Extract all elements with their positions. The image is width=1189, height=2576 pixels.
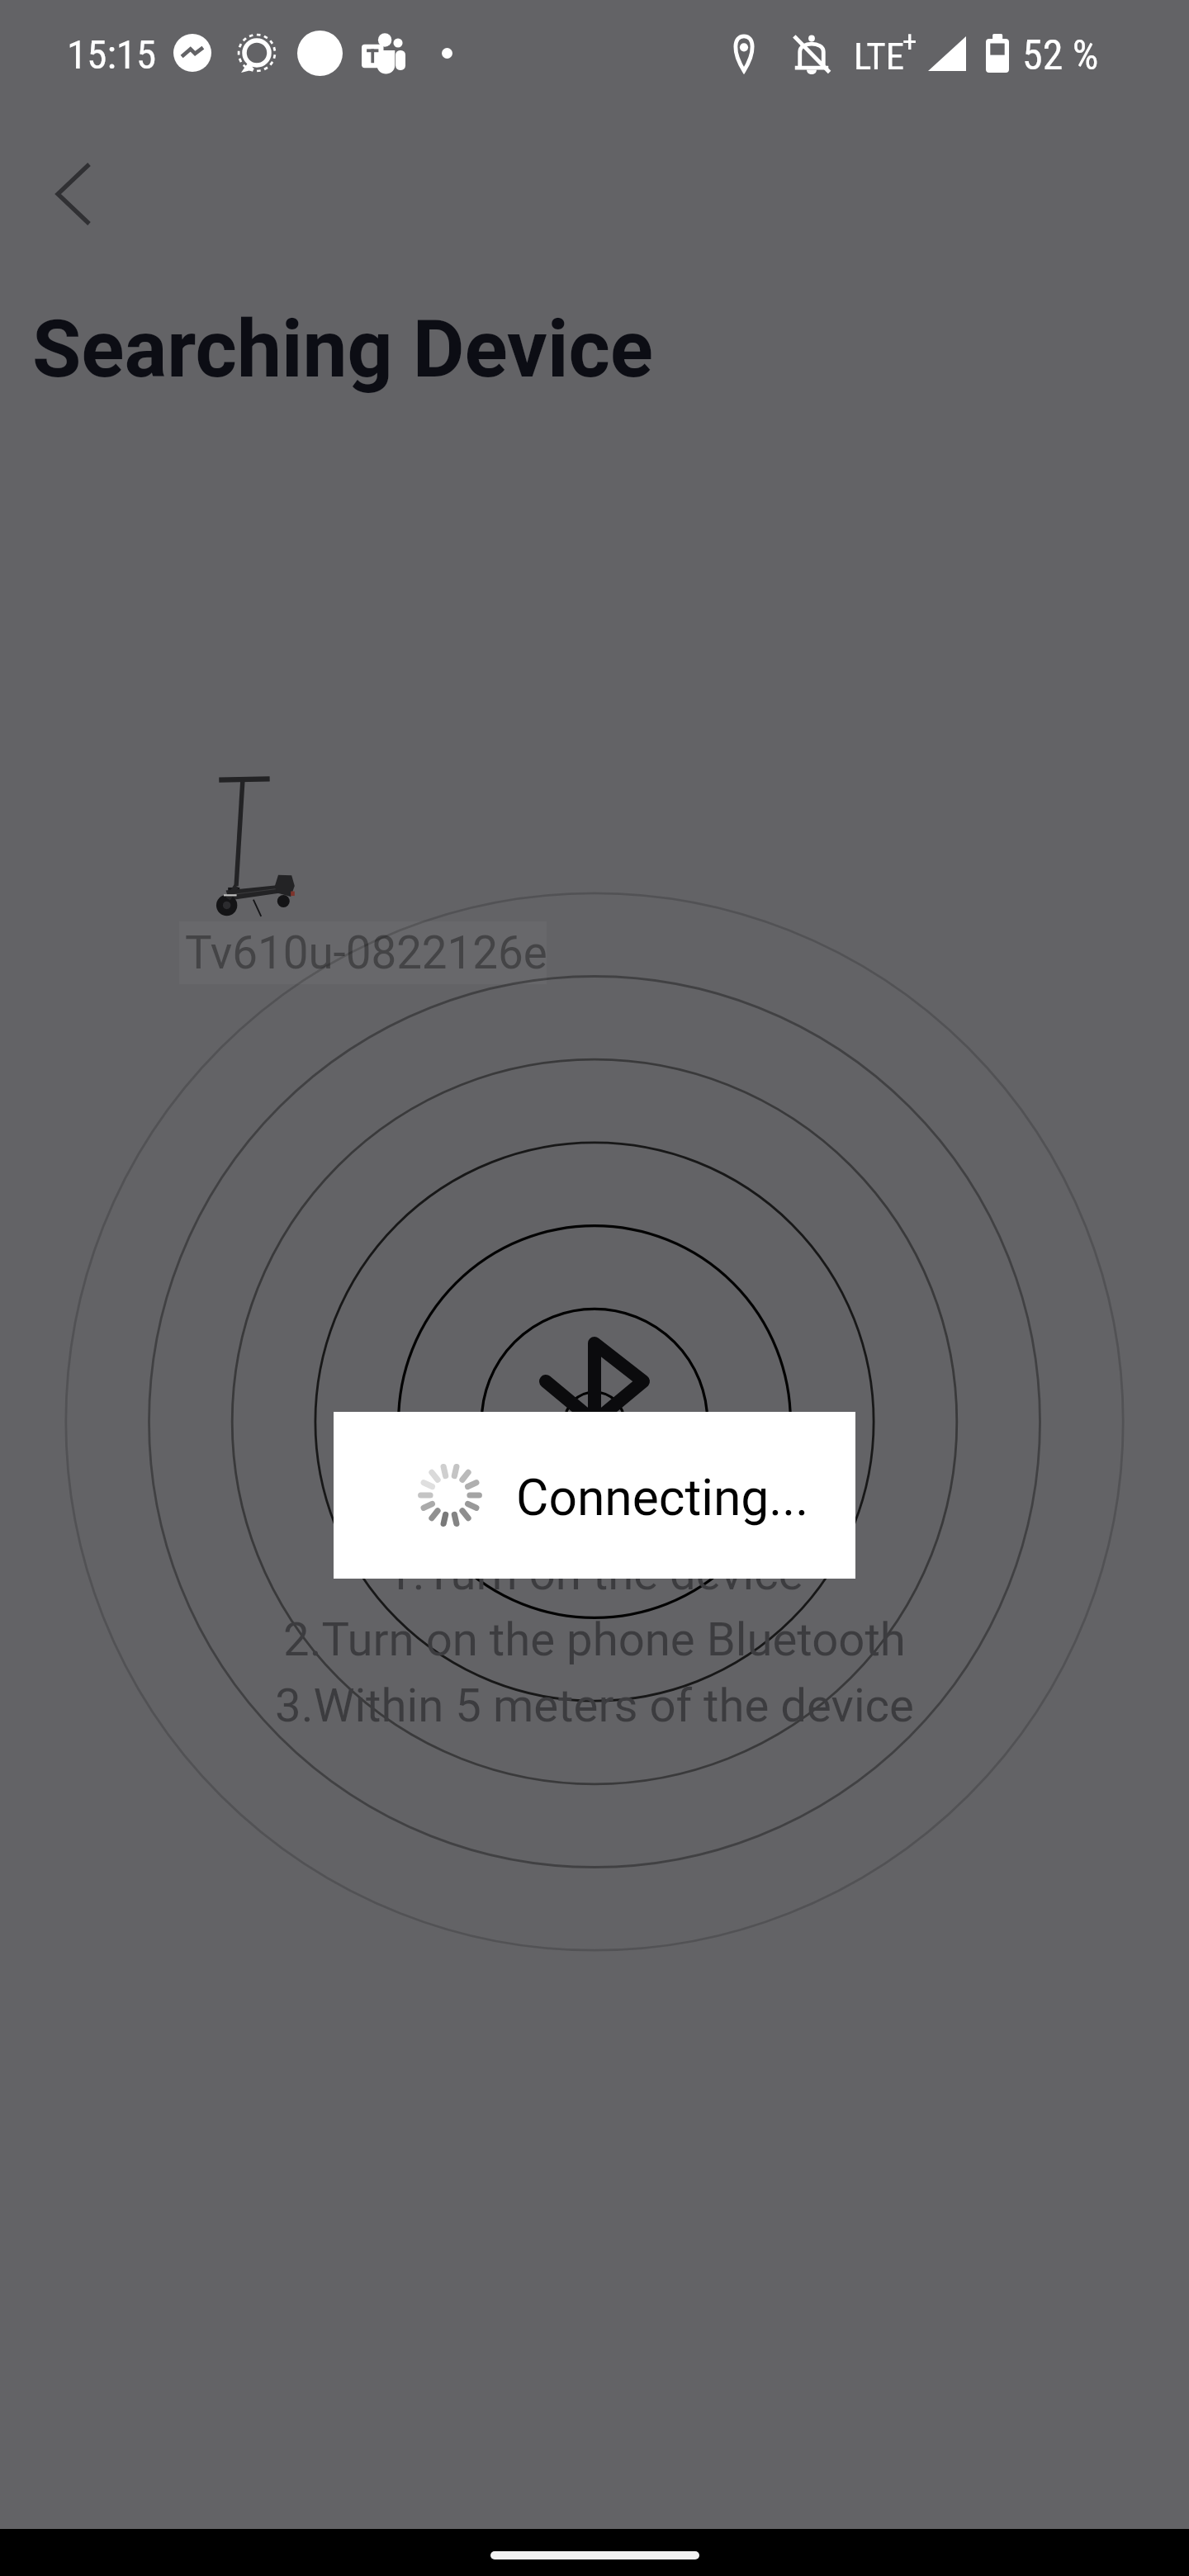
staticText: 15:15 [67, 31, 157, 78]
staticText: 3.Within 5 meters of the device [275, 1679, 914, 1733]
staticText: LTE [854, 35, 905, 78]
staticText: + [902, 25, 917, 59]
staticText: 1.Turn on the device [386, 1546, 803, 1601]
staticText: Connecting... [516, 1469, 809, 1527]
staticText: Searching Device [32, 302, 654, 395]
button[interactable]: Tv610u-0822126e [179, 921, 547, 984]
staticText: 2.Turn on the phone Bluetooth [283, 1612, 906, 1667]
staticText: 52 % [1022, 31, 1099, 80]
staticText: Tv610u-0822126e [185, 926, 547, 979]
button[interactable]: Back [7, 127, 115, 234]
button[interactable]: Connecting... [334, 1412, 855, 1579]
